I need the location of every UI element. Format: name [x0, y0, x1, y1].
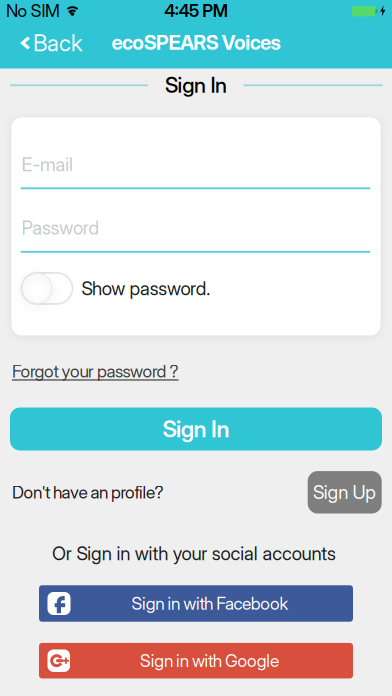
staticText: 4:45 PM: [164, 1, 228, 21]
staticText: No SIM: [6, 1, 60, 21]
staticText: Sign in with Google: [140, 650, 279, 671]
staticText: Sign Up: [313, 481, 376, 503]
button[interactable]: Show password: [21, 273, 72, 304]
button[interactable]: Sign Up: [308, 471, 382, 514]
staticText: Back: [33, 30, 83, 56]
staticText: Sign in with Facebook: [131, 593, 288, 614]
staticText: Or Sign in with your social accounts: [52, 542, 336, 564]
button[interactable]: Back: [0, 23, 83, 63]
staticText: Password: [21, 217, 99, 239]
staticText: Sign In: [162, 416, 230, 442]
button[interactable]: Sign in with Google: [39, 643, 353, 678]
button[interactable]: Sign In: [10, 407, 382, 450]
staticText: ecoSPEARS Voices: [111, 31, 280, 54]
staticText: Sign In: [165, 72, 227, 98]
staticText: Forgot your password ?: [12, 361, 178, 381]
button[interactable]: Forgot your password ?: [12, 361, 178, 381]
button[interactable]: Sign in with Facebook: [39, 585, 353, 622]
staticText: Show password.: [81, 277, 210, 299]
staticText: Don't have an profile?: [12, 482, 163, 502]
staticText: E-mail: [21, 153, 73, 175]
